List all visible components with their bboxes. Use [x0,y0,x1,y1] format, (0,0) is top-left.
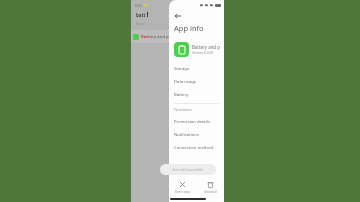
button[interactable]: Data usage [169,75,224,88]
button[interactable]: Batt [131,30,224,43]
button[interactable]: Permission details [169,115,224,128]
button[interactable]: Connection method [169,141,224,154]
staticText: found [136,22,145,26]
staticText: Uninstall [204,190,217,194]
button[interactable]: Storage [169,62,224,75]
button[interactable]: Battery [169,88,224,101]
button[interactable]: Force stop [169,181,196,194]
staticText: 8:26 [135,3,142,8]
staticText: Battery and p [192,44,220,50]
staticText: Uninstall unavailable [172,168,204,172]
staticText: Version 4.3.00 [192,51,214,55]
staticText: Permissions [174,108,192,112]
button[interactable]: Notifications [169,128,224,141]
staticText: Notifications [174,132,199,138]
button[interactable]: Uninstall [196,181,224,194]
staticText: Battery [174,92,189,98]
staticText: Permission details [174,119,210,125]
button[interactable]: Back [172,10,184,22]
staticText: Connection method [174,145,214,151]
button[interactable]: Battery and p [174,39,224,59]
staticText: Batt [141,34,150,40]
button[interactable]: Uninstall unavailable [160,164,216,175]
staticText: ery and performance [150,34,192,40]
staticText: batt [136,12,146,18]
staticText: App info [174,23,204,33]
staticText: Data usage [174,79,197,85]
staticText: Storage [174,66,190,72]
button[interactable]: batt [136,10,176,19]
staticText: Force stop [175,190,190,194]
